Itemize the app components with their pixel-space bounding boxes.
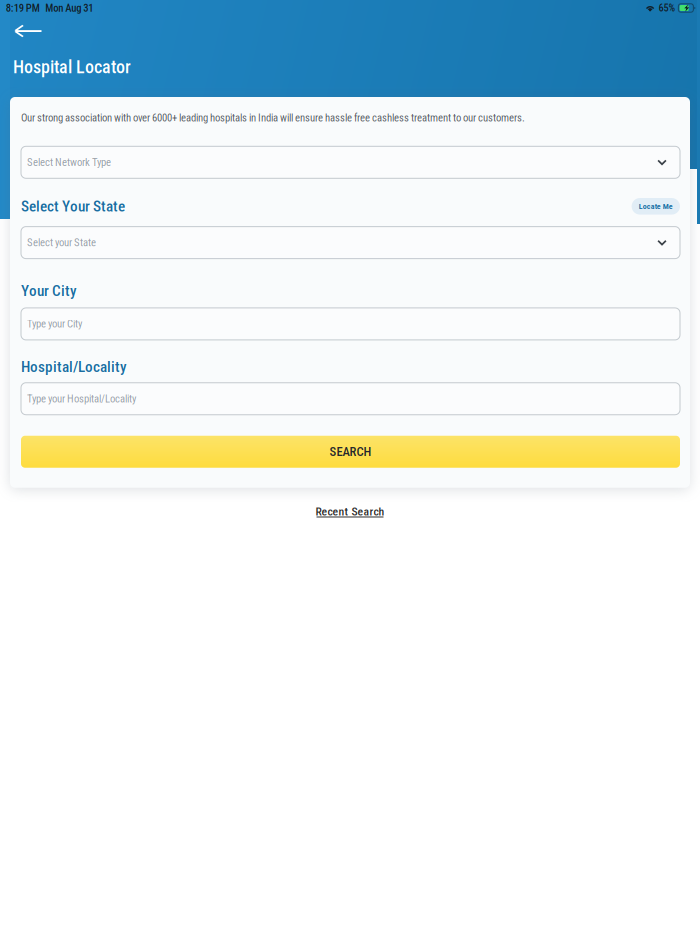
- staticText: Our strong association with over 6000+ l…: [21, 112, 525, 124]
- staticText: Select your State: [27, 236, 96, 249]
- staticText: Type your Hospital/Locality: [27, 392, 136, 405]
- staticText: 65%: [659, 2, 676, 14]
- button[interactable]: Back: [0, 16, 70, 42]
- button[interactable]: Locate Me: [632, 198, 680, 215]
- button[interactable]: Type your City: [21, 308, 680, 340]
- button[interactable]: Select your State: [21, 227, 680, 259]
- button[interactable]: Select Network Type: [21, 146, 680, 178]
- staticText: Hospital Locator: [13, 56, 131, 78]
- staticText: Hospital/Locality: [21, 358, 127, 376]
- button[interactable]: Type your Hospital/Locality: [21, 383, 680, 415]
- staticText: SEARCH: [329, 444, 371, 459]
- staticText: Mon Aug 31: [45, 2, 93, 14]
- staticText: Type your City: [27, 318, 82, 330]
- staticText: Select Network Type: [27, 156, 111, 169]
- staticText: Recent Search: [315, 505, 384, 518]
- staticText: Select Your State: [21, 197, 125, 215]
- button[interactable]: Recent Search: [305, 488, 394, 527]
- staticText: Your City: [21, 282, 77, 300]
- staticText: 8:19 PM: [6, 2, 40, 14]
- button[interactable]: SEARCH: [21, 436, 680, 468]
- staticText: Locate Me: [639, 202, 673, 211]
